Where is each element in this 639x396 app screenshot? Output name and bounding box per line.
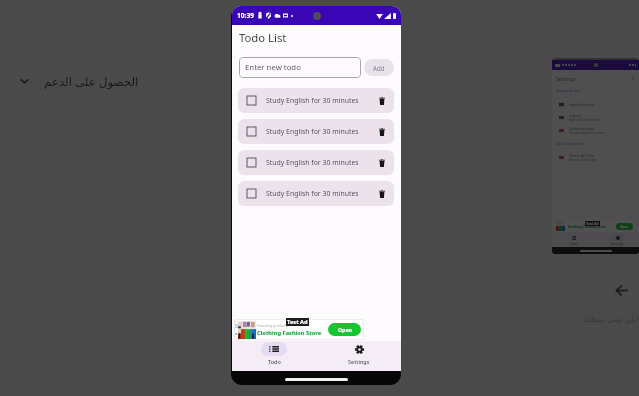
staticText: Delete Account bbox=[569, 126, 595, 131]
button[interactable]: Delete Account bbox=[556, 124, 635, 137]
staticText: Clothing Fashion Store bbox=[257, 329, 322, 337]
button[interactable]: Delete todo bbox=[379, 190, 385, 198]
staticText: Logout bbox=[569, 113, 581, 118]
staticText: Study English for 30 minutes bbox=[266, 158, 359, 167]
staticText: Settings bbox=[611, 242, 624, 246]
staticText: Sign out from this device bbox=[569, 118, 602, 122]
button[interactable]: Study English for 30 minutes bbox=[238, 119, 394, 144]
button[interactable]: Delete All Data bbox=[556, 151, 635, 164]
staticText: Todo bbox=[268, 358, 281, 365]
button[interactable]: Open bbox=[328, 323, 361, 336]
staticText: Study English for 30 minutes bbox=[266, 96, 359, 105]
staticText: الحصول على الدعم bbox=[44, 73, 139, 89]
staticText: Study English for 30 minutes bbox=[266, 127, 359, 136]
button[interactable]: Enter new todo bbox=[239, 57, 361, 78]
button[interactable]: Featuring products bbox=[234, 319, 364, 340]
button[interactable]: Delete todo bbox=[379, 128, 385, 136]
staticText: Test Ad bbox=[586, 221, 599, 226]
button[interactable]: Todo bbox=[232, 341, 316, 371]
button[interactable]: Clothing Fashion Store bbox=[556, 220, 635, 232]
button[interactable]: Study English for 30 minutes bbox=[238, 150, 394, 175]
staticText: Open bbox=[620, 225, 629, 229]
staticText: Delete All Data bbox=[569, 153, 594, 158]
button[interactable]: الحصول على الدعم bbox=[19, 73, 143, 89]
button[interactable]: Add bbox=[364, 59, 394, 76]
staticText: Add bbox=[373, 64, 385, 72]
staticText: Clothing Fashion Store bbox=[568, 224, 607, 229]
staticText: Todo List bbox=[239, 30, 287, 45]
staticText: Test Ad bbox=[287, 318, 308, 326]
button[interactable]: Delete todo bbox=[379, 97, 385, 105]
staticText: Todo bbox=[570, 242, 578, 246]
button[interactable]: Settings bbox=[316, 341, 401, 371]
staticText: Remove all local data bbox=[569, 158, 597, 162]
staticText: لكي تبقى منظمًا bbox=[584, 313, 639, 324]
staticText: Enter new todo bbox=[245, 62, 301, 73]
button[interactable]: Logout bbox=[556, 111, 635, 124]
button[interactable]: Back bbox=[616, 285, 628, 296]
staticText: 10:39 bbox=[237, 11, 254, 20]
button[interactable]: Study English for 30 minutes bbox=[238, 88, 394, 113]
staticText: Send Feedback bbox=[569, 102, 595, 107]
staticText: Account Actions bbox=[556, 89, 580, 93]
staticText: Permanently delete account bbox=[569, 131, 606, 135]
staticText: ☰ bbox=[631, 77, 635, 81]
staticText: Open bbox=[338, 326, 352, 333]
staticText: Settings bbox=[348, 358, 370, 365]
staticText: Settings bbox=[556, 75, 576, 82]
button[interactable]: Send Feedback bbox=[556, 98, 635, 111]
button[interactable]: Delete todo bbox=[379, 159, 385, 167]
staticText: Study English for 30 minutes bbox=[266, 189, 359, 198]
button[interactable]: Study English for 30 minutes bbox=[238, 181, 394, 206]
staticText: Featuring products bbox=[257, 323, 288, 328]
staticText: Data Management bbox=[556, 142, 584, 146]
